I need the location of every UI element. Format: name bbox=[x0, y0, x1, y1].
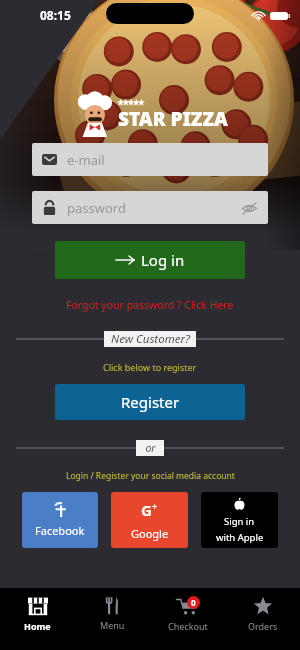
staticText: password bbox=[67, 199, 126, 217]
staticText: Register bbox=[121, 392, 180, 412]
staticText: Click below to register bbox=[103, 361, 197, 373]
staticText: Orders bbox=[248, 620, 278, 632]
button[interactable]: Sign in bbox=[201, 492, 278, 548]
button[interactable]: password bbox=[32, 191, 268, 224]
button[interactable]: Facebook bbox=[22, 492, 98, 548]
other: Checkout bbox=[176, 596, 200, 616]
staticText: Google bbox=[131, 526, 169, 541]
staticText: Login / Register your social media accou… bbox=[66, 470, 235, 482]
staticText: Log in bbox=[141, 250, 185, 270]
staticText: 08:15 bbox=[40, 7, 71, 23]
staticText: Checkout bbox=[168, 620, 208, 632]
staticText: G bbox=[141, 500, 152, 520]
staticText: Facebook bbox=[35, 523, 85, 538]
staticText: Sign in bbox=[224, 515, 255, 528]
button[interactable]: Register bbox=[55, 384, 245, 420]
staticText: Forgot your password ? Click Here bbox=[66, 298, 234, 312]
staticText: STAR PIZZA bbox=[118, 106, 228, 132]
button[interactable]: Show password bbox=[239, 198, 259, 218]
button[interactable]: Orders bbox=[225, 588, 300, 650]
staticText: Home bbox=[24, 620, 51, 632]
other: Menu bbox=[103, 596, 122, 615]
button[interactable]: Log in bbox=[55, 241, 245, 279]
button[interactable]: Forgot your password ? Click Here bbox=[0, 298, 300, 312]
staticText: + bbox=[152, 500, 158, 512]
button[interactable]: Checkout bbox=[150, 588, 225, 650]
staticText: 0 bbox=[191, 597, 196, 608]
staticText: Menu bbox=[100, 619, 125, 631]
other: Home bbox=[28, 596, 48, 616]
button[interactable]: Home bbox=[0, 588, 75, 650]
button[interactable]: e-mail bbox=[32, 143, 268, 176]
staticText: New Customer? bbox=[111, 331, 190, 347]
button[interactable]: G bbox=[111, 492, 188, 548]
button[interactable]: Menu bbox=[75, 588, 150, 650]
staticText: e-mail bbox=[67, 151, 105, 169]
other: Orders bbox=[253, 596, 273, 616]
staticText: with Apple bbox=[216, 531, 264, 544]
staticText: or bbox=[145, 441, 156, 455]
